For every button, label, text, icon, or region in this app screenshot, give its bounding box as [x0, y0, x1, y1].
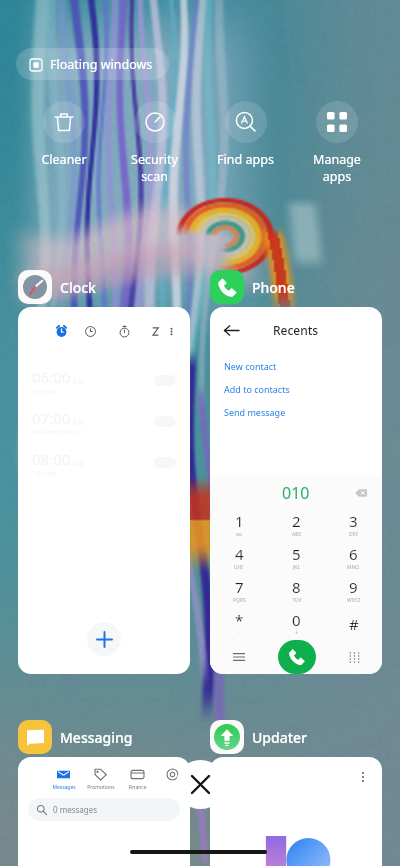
button[interactable]: 9: [325, 574, 382, 607]
button[interactable]: Add alarm: [87, 622, 121, 656]
staticText: Manage apps: [313, 151, 361, 184]
staticText: Floating windows: [50, 56, 153, 73]
button[interactable]: *: [210, 607, 268, 640]
staticText: Send message: [224, 406, 286, 418]
staticText: 9: [349, 577, 358, 597]
button[interactable]: Cleaner: [18, 101, 109, 168]
staticText: ABC: [292, 531, 302, 538]
staticText: +: [295, 630, 298, 637]
staticText: DEF: [349, 531, 359, 538]
button[interactable]: 7: [210, 574, 268, 607]
button[interactable]: 0 messages: [28, 798, 180, 821]
staticText: Messages: [52, 784, 76, 791]
button[interactable]: Keypad: [343, 646, 365, 668]
button[interactable]: #: [325, 607, 382, 640]
button[interactable]: World clock: [81, 322, 99, 340]
staticText: Finance: [128, 784, 147, 791]
staticText: Cleaner: [41, 151, 87, 168]
button[interactable]: Bedtime: [146, 322, 164, 340]
staticText: AM: [73, 377, 84, 387]
staticText: Clock: [60, 278, 96, 297]
staticText: 06:00: [32, 367, 71, 387]
button[interactable]: Messages: [45, 768, 82, 791]
staticText: #: [349, 614, 359, 634]
button[interactable]: Alarm: [52, 322, 70, 340]
staticText: Messaging: [60, 728, 133, 747]
staticText: 08:00: [32, 449, 71, 469]
staticText: *: [235, 610, 244, 630]
button[interactable]: Call: [278, 640, 316, 674]
button[interactable]: Floating windows: [16, 48, 169, 80]
button[interactable]: Security scan: [109, 101, 200, 184]
staticText: Recents: [273, 322, 319, 338]
staticText: 6: [349, 544, 358, 564]
button[interactable]: Timer: [115, 322, 133, 340]
button[interactable]: More options: [354, 768, 372, 786]
staticText: TUV: [292, 597, 302, 604]
button[interactable]: 4: [210, 541, 268, 574]
staticText: 5: [292, 544, 301, 564]
staticText: 8: [292, 577, 301, 597]
button[interactable]: Manage apps: [291, 101, 382, 184]
button[interactable]: 8: [268, 574, 325, 607]
button[interactable]: Menu: [228, 646, 250, 668]
staticText: MNO: [347, 564, 360, 571]
staticText: AM: [73, 459, 84, 469]
staticText: 010: [282, 482, 310, 504]
staticText: 3: [349, 511, 358, 531]
staticText: New contact: [224, 360, 277, 372]
button[interactable]: 2: [268, 508, 325, 541]
staticText: JKL: [293, 564, 301, 571]
staticText: 0: [292, 610, 301, 630]
staticText: Phone: [252, 278, 295, 297]
staticText: WXYZ: [347, 597, 361, 604]
button[interactable]: More options: [162, 322, 180, 340]
staticText: 0 messages: [53, 804, 98, 815]
button[interactable]: Promotions: [82, 768, 119, 791]
button[interactable]: 0: [268, 607, 325, 640]
button[interactable]: 3: [325, 508, 382, 541]
staticText: 1: [235, 511, 244, 531]
button[interactable]: Send message: [210, 400, 382, 423]
button[interactable]: Close all: [176, 760, 225, 809]
staticText: GHI: [234, 564, 244, 571]
staticText: 07:00: [32, 408, 71, 428]
staticText: 2: [292, 511, 301, 531]
staticText: 4: [235, 544, 244, 564]
button[interactable]: [156, 768, 188, 784]
staticText: Updater: [252, 728, 308, 747]
button[interactable]: Find apps: [200, 101, 291, 168]
button[interactable]: 1: [210, 508, 268, 541]
staticText: Promotions: [87, 784, 115, 791]
staticText: Security scan: [131, 151, 178, 184]
staticText: ·: [238, 630, 240, 637]
button[interactable]: Alarm: [18, 307, 190, 674]
button[interactable]: More options: [210, 757, 382, 866]
staticText: Add to contacts: [224, 383, 290, 395]
button[interactable]: Add to contacts: [210, 377, 382, 400]
staticText: AM: [73, 418, 84, 428]
button[interactable]: New contact: [210, 354, 382, 377]
button[interactable]: Messages: [18, 757, 190, 866]
button[interactable]: Back: [210, 307, 382, 674]
button[interactable]: Delete: [352, 484, 370, 502]
staticText: oo: [236, 531, 243, 538]
staticText: 7: [235, 577, 244, 597]
button[interactable]: Finance: [119, 768, 156, 791]
button[interactable]: 6: [325, 541, 382, 574]
staticText: Find apps: [217, 151, 274, 168]
button[interactable]: Back: [220, 319, 242, 341]
staticText: PQRS: [233, 597, 246, 604]
button[interactable]: 5: [268, 541, 325, 574]
